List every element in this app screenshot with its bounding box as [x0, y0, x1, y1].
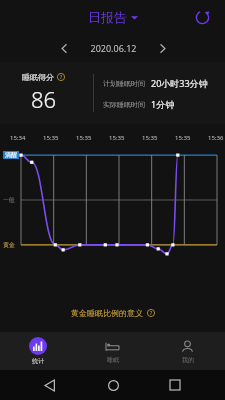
- staticText: ?: [60, 74, 63, 81]
- staticText: 15:36: [208, 134, 224, 142]
- staticText: 日报告: [88, 9, 127, 25]
- button[interactable]: 黄金睡眠比例的意义: [63, 304, 163, 322]
- staticText: 睡眠: [107, 356, 119, 364]
- staticText: 20小时33分钟: [151, 77, 208, 89]
- button[interactable]: 我的: [150, 332, 225, 370]
- staticText: 我的: [182, 356, 194, 364]
- staticText: 1分钟: [151, 98, 175, 110]
- button[interactable]: Refresh: [189, 4, 215, 30]
- button[interactable]: 2020.06.12: [77, 42, 149, 54]
- button[interactable]: 睡眠: [75, 332, 150, 370]
- button[interactable]: Next day: [149, 35, 175, 61]
- button[interactable]: 睡眠得分: [22, 72, 65, 82]
- staticText: ?: [150, 310, 153, 317]
- staticText: 黄金睡眠比例的意义: [71, 308, 143, 318]
- staticText: 清醒: [5, 151, 17, 159]
- staticText: 15:35: [76, 134, 92, 142]
- staticText: 睡眠得分: [22, 72, 54, 82]
- button[interactable]: Recents: [163, 373, 187, 397]
- button[interactable]: 统计: [0, 332, 75, 370]
- button[interactable]: Previous day: [51, 35, 77, 61]
- staticText: 15:35: [109, 134, 125, 142]
- staticText: 计划睡眠时间: [103, 79, 145, 88]
- button[interactable]: Back: [38, 373, 62, 397]
- staticText: 一般: [3, 196, 15, 204]
- staticText: 15:34: [10, 134, 26, 142]
- staticText: 15:35: [142, 134, 158, 142]
- staticText: 15:35: [43, 134, 59, 142]
- button[interactable]: Home: [101, 373, 125, 397]
- staticText: 86: [31, 84, 57, 114]
- staticText: 实际睡眠时间: [103, 100, 145, 109]
- button[interactable]: 日报告: [82, 6, 144, 28]
- staticText: 统计: [32, 357, 44, 365]
- staticText: 黄金: [3, 241, 15, 249]
- staticText: 2020.06.12: [90, 42, 137, 54]
- staticText: 15:35: [175, 134, 191, 142]
